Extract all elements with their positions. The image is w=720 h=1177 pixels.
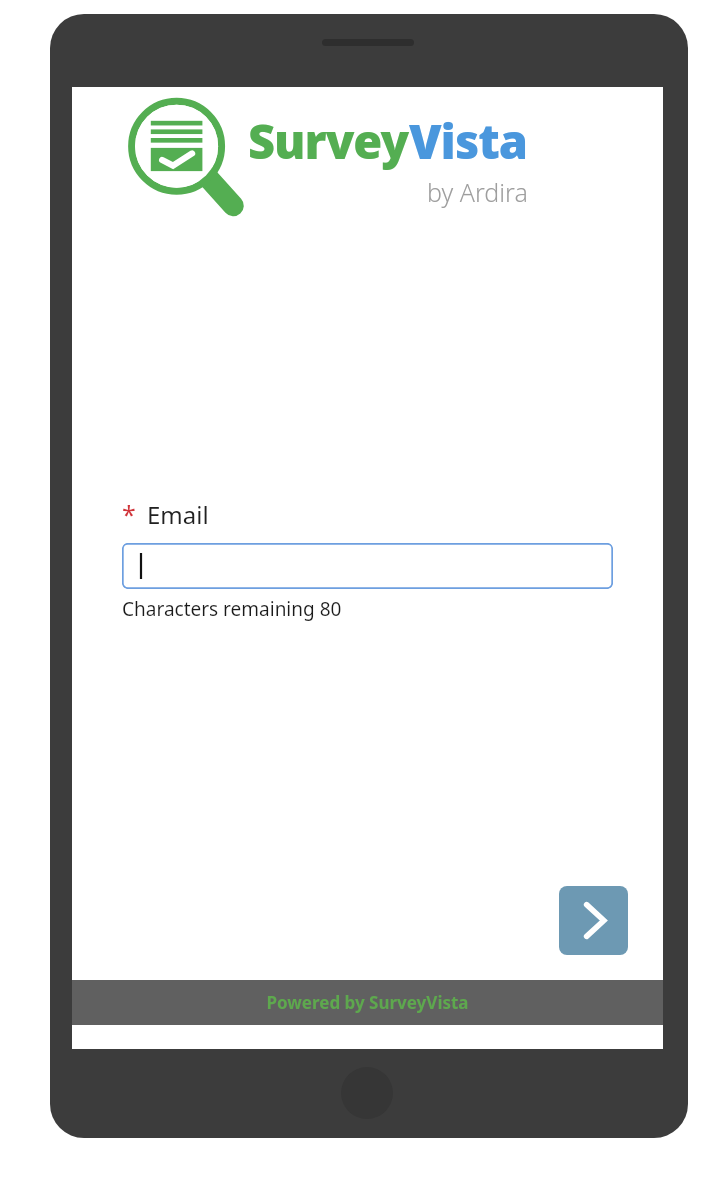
button[interactable]: Powered by SurveyVista [72,980,663,1025]
staticText: Vista [409,109,528,173]
staticText: by Ardira [427,175,528,209]
staticText: Survey [248,109,409,173]
staticText: Email [147,498,209,531]
button[interactable]: Next [559,886,628,955]
staticText: Powered by SurveyVista [266,991,469,1014]
staticText: * [122,497,136,531]
staticText: Characters remaining 80 [122,596,342,622]
button[interactable] [122,543,613,589]
